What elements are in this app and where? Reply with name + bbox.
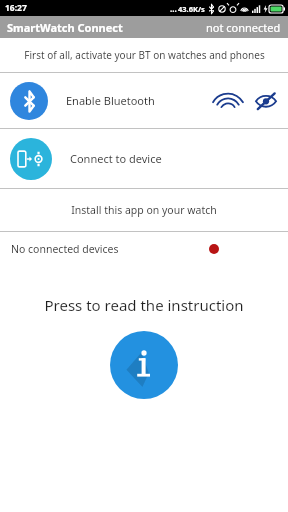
other: Visibility xyxy=(210,90,246,112)
staticText: ... xyxy=(170,3,177,14)
staticText: 16:27 xyxy=(5,2,27,14)
button[interactable]: Enable Bluetooth xyxy=(0,73,288,128)
button[interactable]: Connect to device xyxy=(0,129,288,188)
staticText: not connected xyxy=(206,20,281,35)
staticText: 43.6K/s xyxy=(178,4,205,14)
staticText: Enable Bluetooth xyxy=(66,93,155,108)
staticText: SmartWatch Connect xyxy=(7,20,123,35)
button[interactable]: Read the instruction xyxy=(110,331,178,399)
staticText: Connect to device xyxy=(70,151,162,166)
staticText: Install this app on your watch xyxy=(71,203,217,217)
staticText: No connected devices xyxy=(11,242,119,256)
staticText: Press to read the instruction xyxy=(0,295,288,315)
staticText: First of all, activate your BT on watche… xyxy=(24,48,265,62)
other: Hidden xyxy=(254,92,278,110)
button[interactable]: No connected devices xyxy=(0,232,288,265)
